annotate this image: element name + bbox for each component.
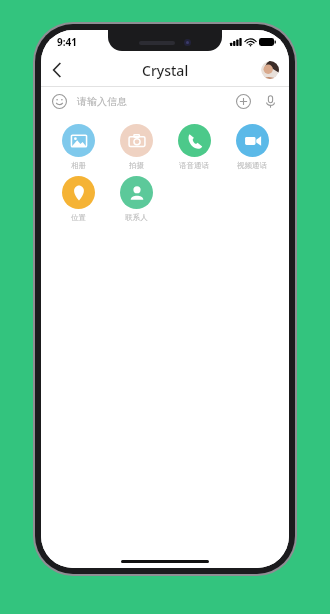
staticText: 拍摄 [129,161,144,170]
button[interactable]: Voice [263,94,278,109]
button[interactable]: 联系人 [107,176,165,222]
button[interactable]: 视频通话 [223,124,281,170]
button[interactable]: 语音通话 [165,124,223,170]
staticText: 相册 [71,161,86,170]
button[interactable]: Emoji [52,94,67,109]
button[interactable]: 相册 [49,124,107,170]
button[interactable]: Profile [261,61,279,79]
staticText: 语音通话 [179,161,209,170]
button[interactable]: Add [236,94,251,109]
staticText: 视频通话 [237,161,267,170]
button[interactable]: 拍摄 [107,124,165,170]
button[interactable]: Back [41,54,73,86]
staticText: 联系人 [125,213,148,222]
button[interactable]: 位置 [49,176,107,222]
staticText: 9:41 [57,35,77,49]
staticText: Crystal [142,61,189,80]
staticText: 请输入信息 [77,95,236,108]
staticText: 位置 [71,213,86,222]
